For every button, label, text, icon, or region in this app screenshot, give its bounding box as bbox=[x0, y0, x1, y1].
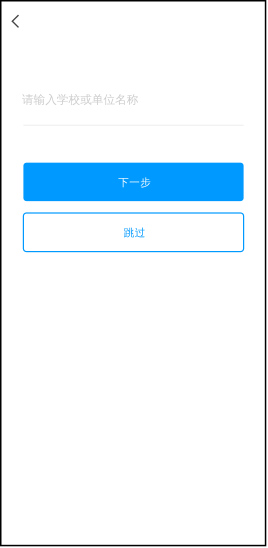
staticText: 跳过 bbox=[124, 226, 146, 239]
staticText: 下一步 bbox=[118, 176, 151, 189]
button[interactable]: 跳过 bbox=[23, 213, 244, 252]
button[interactable]: Back bbox=[0, 0, 35, 40]
button[interactable]: 下一步 bbox=[23, 163, 244, 201]
button[interactable]: 请输入学校或单位名称 bbox=[23, 94, 244, 126]
staticText: 请输入学校或单位名称 bbox=[22, 92, 139, 107]
